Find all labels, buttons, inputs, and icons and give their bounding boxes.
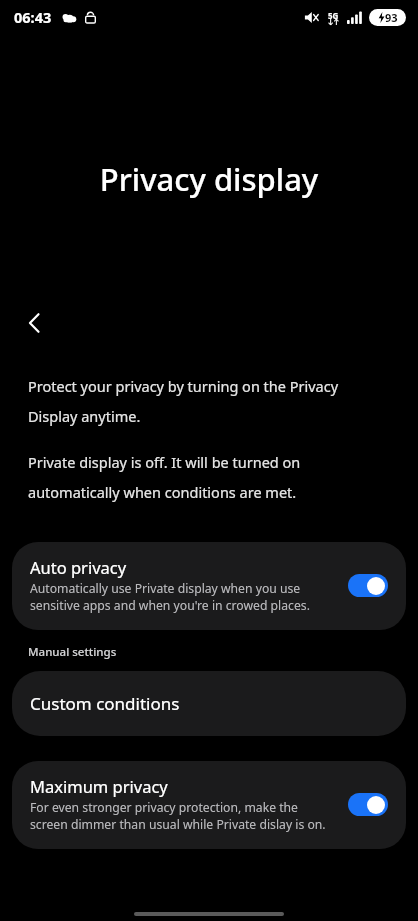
button[interactable]: Toggle — [348, 793, 388, 816]
button[interactable]: Maximum privacy — [12, 761, 406, 849]
staticText: Automatically use Private display when y… — [30, 580, 334, 614]
staticText: Manual settings — [28, 644, 117, 660]
staticText: Privacy display — [0, 158, 418, 200]
staticText: Protect your privacy by turning on the P… — [28, 376, 372, 426]
button[interactable]: Custom conditions — [12, 671, 406, 736]
button[interactable]: Auto privacy — [12, 542, 406, 630]
staticText: Custom conditions — [30, 692, 180, 715]
staticText: 93 — [385, 10, 398, 25]
button[interactable]: Toggle — [348, 574, 388, 597]
staticText: 5G — [328, 10, 339, 21]
staticText: Private display is off. It will be turne… — [28, 452, 372, 502]
button[interactable]: Back — [12, 300, 58, 346]
staticText: Auto privacy — [30, 556, 127, 578]
staticText: For even stronger privacy protection, ma… — [30, 799, 334, 833]
staticText: 06:43 — [14, 7, 52, 27]
staticText: Maximum privacy — [30, 775, 168, 797]
